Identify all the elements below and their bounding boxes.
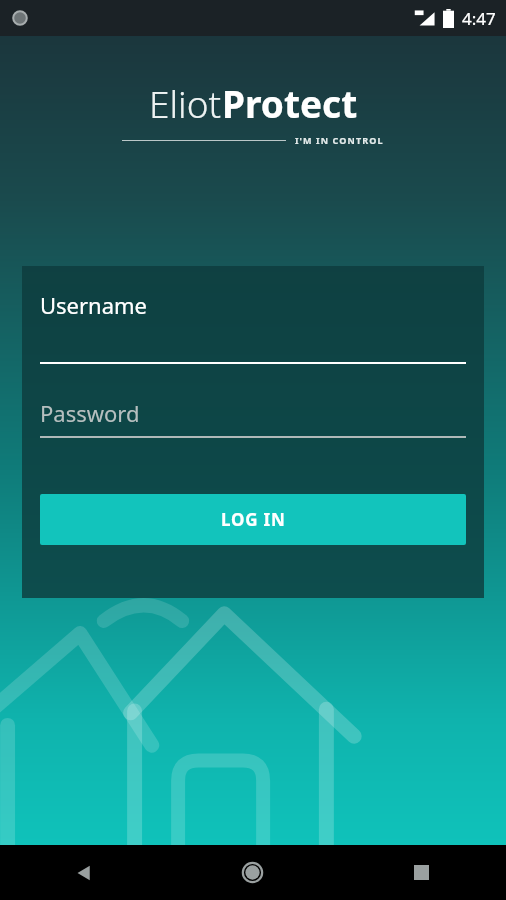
staticText: Protect bbox=[222, 78, 358, 128]
staticText: Password bbox=[40, 398, 140, 428]
button[interactable]: Back bbox=[0, 845, 168, 900]
staticText: 4:47 bbox=[462, 7, 496, 30]
button[interactable]: Home bbox=[168, 845, 337, 900]
staticText: Eliot bbox=[149, 78, 222, 128]
button[interactable]: Password bbox=[40, 398, 466, 438]
staticText: Username bbox=[40, 290, 148, 320]
staticText: LOG IN bbox=[221, 508, 286, 531]
button[interactable]: LOG IN bbox=[40, 494, 466, 545]
button[interactable]: Username bbox=[40, 290, 466, 364]
button[interactable]: Recent apps bbox=[337, 845, 506, 900]
staticText: I'M IN CONTROL bbox=[295, 134, 384, 146]
